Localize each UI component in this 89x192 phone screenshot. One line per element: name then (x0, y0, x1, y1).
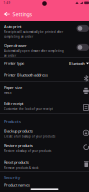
staticText: Security (4, 175, 20, 180)
button[interactable]: Reset products (0, 155, 89, 171)
button[interactable]: Paper size (0, 82, 89, 98)
staticText: Printer type (4, 61, 24, 66)
button[interactable]: Restore products (0, 140, 89, 155)
button[interactable]: Back (0, 12, 10, 16)
staticText: an order (4, 54, 16, 57)
button[interactable]: Printer Bluetooth address (0, 68, 89, 81)
button[interactable]: Printer type (0, 58, 89, 68)
staticText: Settings (12, 10, 32, 18)
staticText: Automatically open drawer after completi… (4, 49, 64, 53)
staticText: Restore a backup of your products (4, 149, 51, 153)
staticText: Printer Bluetooth address (4, 72, 48, 78)
staticText: Open drawer (4, 43, 27, 48)
staticText: Paper size (4, 85, 22, 90)
staticText: Receipts will automatically be printed a… (4, 30, 63, 34)
button[interactable]: Backup products (0, 126, 89, 140)
button[interactable]: Open drawer (0, 39, 89, 57)
staticText: Reset products (4, 160, 29, 165)
button[interactable]: Auto print (0, 21, 89, 39)
staticText: Edit receipt (4, 101, 23, 106)
staticText: Product names (4, 182, 30, 188)
staticText: Create a full backup of your products (4, 135, 55, 138)
staticText: Customize the look of your receipt (4, 107, 53, 111)
staticText: Auto print (4, 24, 21, 29)
staticText: 1:49 (3, 1, 10, 5)
staticText: Backup products (4, 128, 33, 134)
staticText: Remove products & stock (4, 166, 38, 170)
button[interactable]: Edit receipt (0, 98, 89, 113)
staticText: completing an order (4, 35, 33, 38)
staticText: Restore products (4, 143, 33, 148)
button[interactable]: Product names (0, 181, 89, 192)
staticText: Bluetooth (68, 61, 84, 66)
staticText: mm58 (4, 91, 12, 95)
staticText: Products (4, 119, 21, 124)
button[interactable]: Settings (10, 10, 32, 18)
